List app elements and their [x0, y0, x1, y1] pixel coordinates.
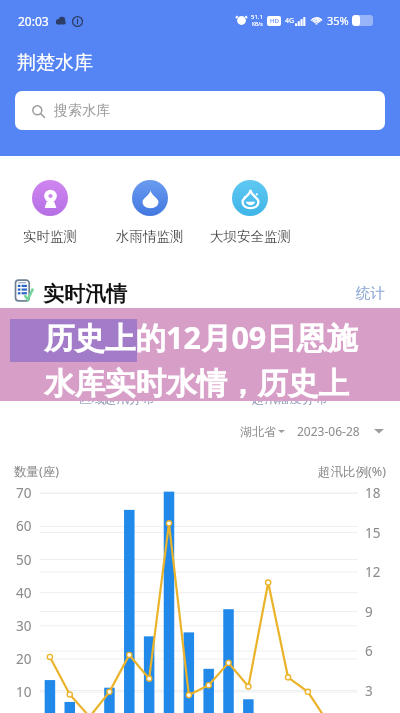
button[interactable]: 超汛幅度分布	[239, 389, 339, 409]
staticText: KB/s	[252, 21, 263, 28]
staticText: 51.1	[251, 13, 263, 21]
staticText: 30	[16, 617, 32, 635]
staticText: 10	[16, 683, 32, 701]
button[interactable]: 2023-06-28	[297, 423, 384, 439]
staticText: 搜索水库	[54, 102, 110, 120]
staticText: 6	[365, 642, 373, 660]
staticText: 12	[365, 563, 381, 581]
staticText: 4G	[285, 16, 295, 26]
button[interactable]: 搜索水库	[15, 91, 385, 130]
staticText: 超汛幅度分布	[252, 391, 327, 407]
staticText: 3	[365, 682, 373, 700]
staticText: 50	[16, 551, 32, 569]
staticText: HD	[270, 17, 279, 25]
staticText: 实时监测	[23, 228, 77, 244]
button[interactable]: 区域超汛分布	[66, 389, 166, 409]
button[interactable]: 湖北省	[240, 424, 285, 439]
staticText: 历史上的12月09日恩施 水库实时水情，历史上	[44, 316, 358, 403]
staticText: 70	[16, 484, 32, 502]
staticText: 超汛比例(%)	[318, 463, 386, 480]
staticText: 区域超汛分布	[79, 391, 154, 407]
staticText: 统计	[356, 284, 385, 302]
staticText: 实时汛情	[43, 281, 127, 307]
staticText: 35%	[327, 13, 349, 28]
button[interactable]: 统计	[350, 282, 390, 304]
staticText: 18	[365, 484, 381, 502]
staticText: 湖北省	[240, 424, 276, 439]
staticText: 40	[16, 584, 32, 602]
staticText: 大坝安全监测	[210, 228, 291, 244]
button[interactable]: 大坝安全监测	[200, 164, 300, 244]
staticText: 9	[365, 603, 373, 621]
staticText: 20	[16, 650, 32, 668]
staticText: 数量(座)	[14, 463, 60, 480]
staticText: 60	[16, 517, 32, 535]
staticText: 荆楚水库	[17, 51, 93, 75]
staticText: 2023-06-28	[297, 423, 360, 439]
button[interactable]: 水雨情监测	[100, 164, 200, 244]
staticText: 20:03	[18, 13, 49, 29]
staticText: 15	[365, 524, 381, 542]
button[interactable]: 实时监测	[0, 164, 100, 244]
staticText: 水雨情监测	[116, 228, 184, 244]
